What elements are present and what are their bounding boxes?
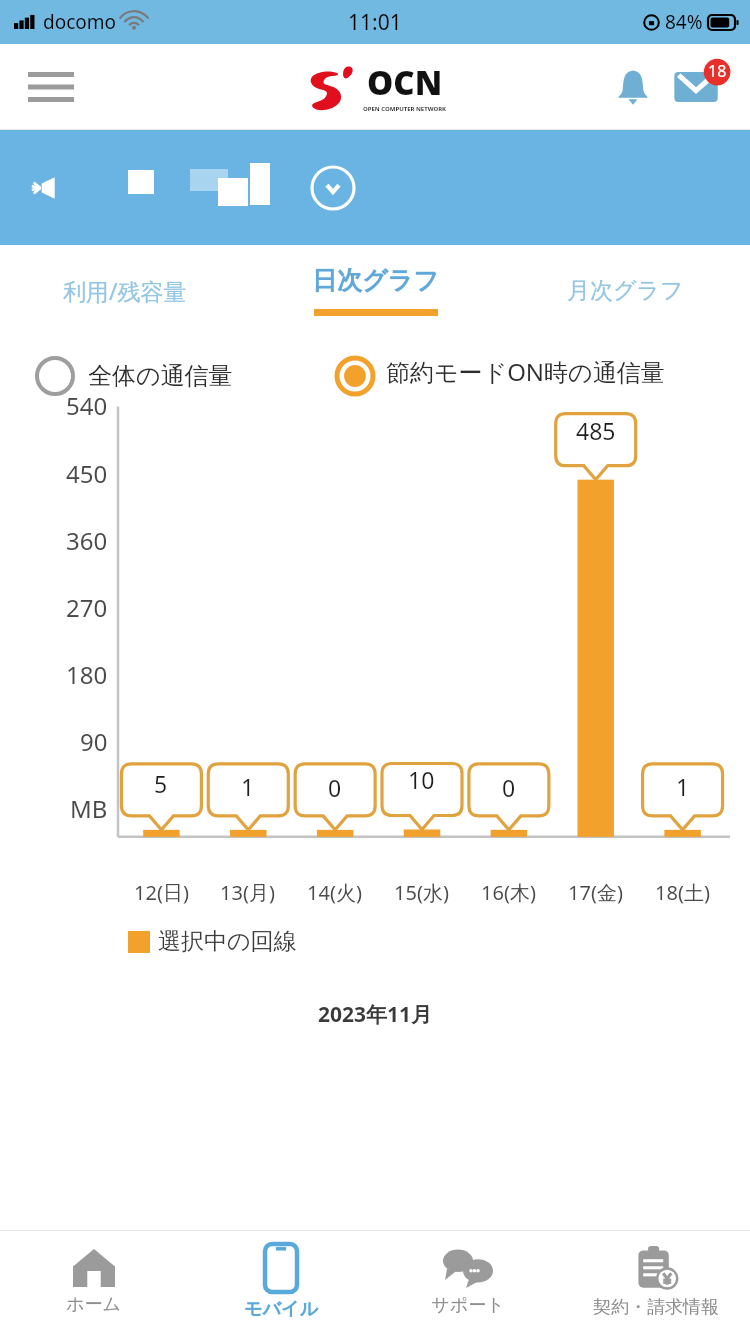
- staticText: 月次グラフ: [567, 276, 684, 305]
- button[interactable]: 日次グラフ: [250, 245, 500, 335]
- staticText: 0: [328, 772, 342, 803]
- staticText: 12(日): [134, 879, 189, 906]
- staticText: 2023年11月: [318, 1000, 433, 1029]
- staticText: 14(火): [307, 879, 362, 906]
- staticText: 485: [576, 415, 616, 446]
- staticText: 13(月): [220, 879, 275, 906]
- staticText: サポート: [431, 1294, 505, 1317]
- staticText: 540: [66, 389, 108, 422]
- staticText: 5: [154, 768, 168, 799]
- staticText: 1: [241, 771, 255, 802]
- staticText: 17(金): [568, 879, 623, 906]
- staticText: 180: [66, 658, 108, 691]
- staticText: 日次グラフ: [312, 265, 439, 296]
- button[interactable]: モバイル: [187, 1231, 374, 1334]
- staticText: 11:01: [348, 8, 402, 37]
- button[interactable]: Notifications: [604, 58, 662, 116]
- staticText: 全体の通信量: [88, 361, 233, 391]
- staticText: OCN: [367, 60, 443, 105]
- staticText: モバイル: [244, 1298, 318, 1321]
- staticText: OPEN COMPUTER NETWORK: [363, 105, 447, 113]
- button[interactable]: 契約・請求情報: [562, 1231, 750, 1334]
- button[interactable]: Mail, 18 unread: [670, 56, 732, 118]
- staticText: 84%: [665, 9, 703, 35]
- staticText: 1: [676, 771, 690, 802]
- button[interactable]: ホーム: [0, 1231, 187, 1334]
- button[interactable]: Expand: [0, 130, 750, 245]
- button[interactable]: 節約モードON時の通信量: [334, 355, 730, 397]
- staticText: 360: [66, 524, 108, 557]
- staticText: 節約モードON時の通信量: [386, 355, 665, 388]
- staticText: 18: [708, 60, 727, 82]
- staticText: 270: [66, 591, 108, 624]
- staticText: 契約・請求情報: [593, 1296, 719, 1319]
- button[interactable]: サポート: [374, 1231, 562, 1334]
- staticText: docomo: [43, 9, 117, 35]
- staticText: 10: [408, 764, 435, 795]
- staticText: 450: [66, 457, 108, 490]
- staticText: MB: [70, 792, 108, 825]
- staticText: 18(土): [655, 879, 710, 906]
- staticText: 利用/残容量: [63, 275, 187, 306]
- staticText: 16(木): [481, 879, 536, 906]
- button[interactable]: 全体の通信量: [34, 355, 334, 397]
- staticText: 0: [502, 772, 516, 803]
- button[interactable]: 月次グラフ: [500, 245, 750, 335]
- staticText: 15(水): [394, 879, 449, 906]
- button[interactable]: Menu: [20, 56, 82, 118]
- button[interactable]: 利用/残容量: [0, 245, 250, 335]
- staticText: 90: [80, 725, 108, 758]
- staticText: 選択中の回線: [158, 927, 297, 956]
- button[interactable]: Expand: [310, 165, 356, 211]
- staticText: ホーム: [66, 1293, 121, 1316]
